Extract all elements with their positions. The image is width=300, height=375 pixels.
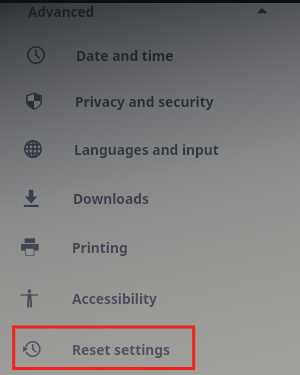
staticText: Downloads	[73, 189, 149, 208]
staticText: Privacy and security	[75, 92, 214, 111]
button[interactable]: Privacy and security	[0, 78, 300, 124]
button[interactable]: Collapse Advanced	[254, 3, 270, 19]
button[interactable]: Languages and input	[0, 126, 300, 172]
staticText: Printing	[72, 238, 128, 257]
staticText: Date and time	[76, 46, 174, 65]
button[interactable]: Printing	[0, 224, 300, 270]
staticText: Accessibility	[72, 289, 157, 308]
staticText: Reset settings	[72, 340, 170, 359]
staticText: Languages and input	[74, 140, 219, 159]
button[interactable]: Accessibility	[0, 275, 300, 321]
button[interactable]: Advanced	[0, 3, 300, 25]
button[interactable]: Reset settings	[0, 326, 300, 372]
button[interactable]: Date and time	[0, 32, 300, 78]
button[interactable]: Downloads	[0, 175, 300, 221]
staticText: Advanced	[28, 3, 95, 21]
